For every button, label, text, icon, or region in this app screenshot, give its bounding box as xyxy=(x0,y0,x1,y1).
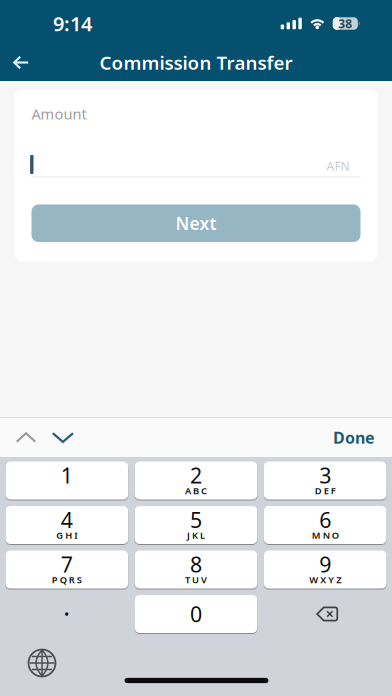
button[interactable]: 9 xyxy=(264,550,386,588)
button[interactable]: Next field xyxy=(51,426,74,449)
staticText: 2 xyxy=(190,461,202,489)
staticText: 6 xyxy=(319,506,331,534)
staticText: D E F xyxy=(315,484,336,497)
button[interactable]: 7 xyxy=(5,550,128,588)
button[interactable]: 3 xyxy=(264,461,386,499)
staticText: 1 xyxy=(61,461,73,489)
staticText: . xyxy=(64,593,70,622)
button[interactable]: 2 xyxy=(135,461,257,499)
button[interactable]: 6 xyxy=(264,506,386,544)
staticText: 7 xyxy=(61,550,73,578)
staticText: 8 xyxy=(190,550,202,578)
button[interactable]: 5 xyxy=(135,506,257,544)
button[interactable]: 1 xyxy=(5,461,128,499)
staticText: M N O xyxy=(312,529,339,541)
staticText: A B C xyxy=(185,484,207,497)
button[interactable]: Done xyxy=(333,427,375,448)
button[interactable]: Delete xyxy=(264,595,386,633)
button[interactable]: Next xyxy=(31,204,360,242)
staticText: Next xyxy=(175,212,216,235)
staticText: 0 xyxy=(190,600,202,628)
button[interactable]: Back xyxy=(0,45,29,80)
staticText: 4 xyxy=(61,506,73,534)
staticText: Amount xyxy=(31,104,86,123)
staticText: T U V xyxy=(185,573,207,586)
staticText: AFN xyxy=(326,158,349,174)
staticText: 9:14 xyxy=(53,10,92,37)
staticText: W X Y Z xyxy=(309,573,341,586)
button[interactable]: Switch keyboard xyxy=(20,641,63,684)
button[interactable]: Previous field xyxy=(15,426,36,449)
staticText: 9 xyxy=(319,550,331,578)
staticText: Done xyxy=(333,427,375,448)
button[interactable]: Decimal point xyxy=(5,595,128,633)
button[interactable]: 4 xyxy=(5,506,128,544)
button[interactable]: 0 xyxy=(135,595,257,633)
staticText: Commission Transfer xyxy=(99,50,292,75)
staticText: G H I xyxy=(56,529,77,541)
staticText: 5 xyxy=(190,506,202,534)
staticText: 3 xyxy=(319,461,331,489)
staticText: 38 xyxy=(338,15,352,31)
button[interactable]: 8 xyxy=(135,550,257,588)
staticText: P Q R S xyxy=(52,573,82,586)
staticText: J K L xyxy=(187,529,205,541)
